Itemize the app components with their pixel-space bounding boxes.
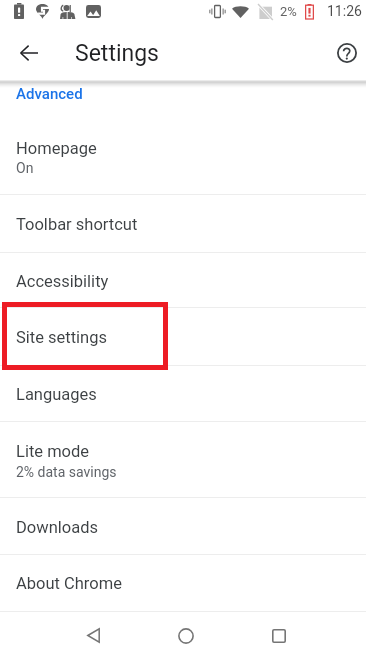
button[interactable]: Accessibility (0, 253, 366, 308)
staticText: About Chrome (16, 574, 122, 593)
button[interactable]: Lite mode (0, 422, 366, 498)
staticText: 2% (280, 4, 297, 19)
button[interactable]: Languages (0, 366, 366, 422)
button[interactable]: Recents (255, 617, 303, 654)
button[interactable]: Back (9, 33, 49, 73)
staticText: Accessibility (16, 272, 109, 291)
button[interactable]: Toolbar shortcut (0, 195, 366, 253)
button[interactable]: Back (69, 617, 117, 654)
staticText: Site settings (16, 328, 108, 347)
staticText: Homepage (16, 139, 97, 158)
staticText: 2% data savings (16, 464, 117, 480)
staticText: Lite mode (16, 442, 90, 461)
button[interactable]: Downloads (0, 498, 366, 555)
staticText: Toolbar shortcut (16, 215, 138, 234)
staticText: Advanced (16, 85, 83, 103)
button[interactable]: Home (162, 617, 210, 654)
button[interactable]: Site settings (0, 308, 366, 366)
staticText: Languages (16, 385, 97, 404)
button[interactable]: Homepage (0, 131, 366, 195)
staticText: 11:26 (327, 3, 362, 19)
button[interactable]: Help (327, 33, 366, 73)
staticText: Downloads (16, 518, 98, 537)
staticText: Settings (75, 40, 159, 67)
staticText: On (16, 160, 34, 176)
button[interactable]: About Chrome (0, 555, 366, 612)
